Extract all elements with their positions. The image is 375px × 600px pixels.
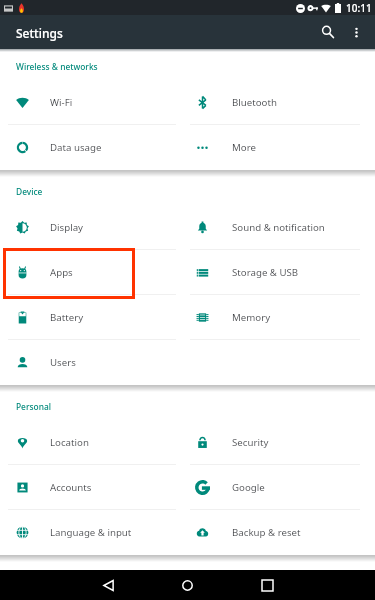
staticText: Backup & reset xyxy=(232,526,301,539)
button[interactable]: More options xyxy=(343,19,369,45)
button[interactable]: Location xyxy=(0,420,183,465)
staticText: Wireless & networks xyxy=(16,61,98,72)
button[interactable]: Memory xyxy=(183,295,375,340)
button[interactable]: Backup & reset xyxy=(183,510,375,555)
staticText: Language & input xyxy=(50,526,132,539)
button[interactable]: Language & input xyxy=(0,510,183,555)
staticText: Wi-Fi xyxy=(50,96,73,109)
staticText: Users xyxy=(50,356,76,369)
staticText: Display xyxy=(50,221,84,234)
staticText: 10:11 xyxy=(346,1,372,15)
staticText: Settings xyxy=(16,25,63,41)
staticText: Accounts xyxy=(50,481,92,494)
staticText: Security xyxy=(232,436,269,449)
button[interactable]: Display xyxy=(0,205,183,250)
staticText: Storage & USB xyxy=(232,266,299,279)
button[interactable]: Data usage xyxy=(0,125,183,170)
staticText: Google xyxy=(232,481,265,494)
button[interactable]: Recent apps xyxy=(247,570,287,600)
button[interactable]: Apps xyxy=(0,250,183,295)
staticText: Personal xyxy=(16,401,52,412)
staticText: Memory xyxy=(232,311,271,324)
staticText: Sound & notification xyxy=(232,221,325,234)
button[interactable]: Storage & USB xyxy=(183,250,375,295)
button[interactable]: Google xyxy=(183,465,375,510)
button[interactable]: Users xyxy=(0,340,183,385)
button[interactable]: Back xyxy=(88,570,128,600)
staticText: Device xyxy=(16,186,43,197)
button[interactable]: Home xyxy=(167,570,207,600)
staticText: Bluetooth xyxy=(232,96,277,109)
button[interactable]: Security xyxy=(183,420,375,465)
staticText: More xyxy=(232,141,256,154)
button[interactable]: Battery xyxy=(0,295,183,340)
button[interactable]: Sound & notification xyxy=(183,205,375,250)
staticText: Location xyxy=(50,436,89,449)
button[interactable]: Wi-Fi xyxy=(0,80,183,125)
staticText: Data usage xyxy=(50,141,102,154)
staticText: Battery xyxy=(50,311,84,324)
button[interactable]: Accounts xyxy=(0,465,183,510)
button[interactable]: Bluetooth xyxy=(183,80,375,125)
button[interactable]: Search xyxy=(313,17,343,47)
button[interactable]: More xyxy=(183,125,375,170)
staticText: Apps xyxy=(50,266,73,279)
